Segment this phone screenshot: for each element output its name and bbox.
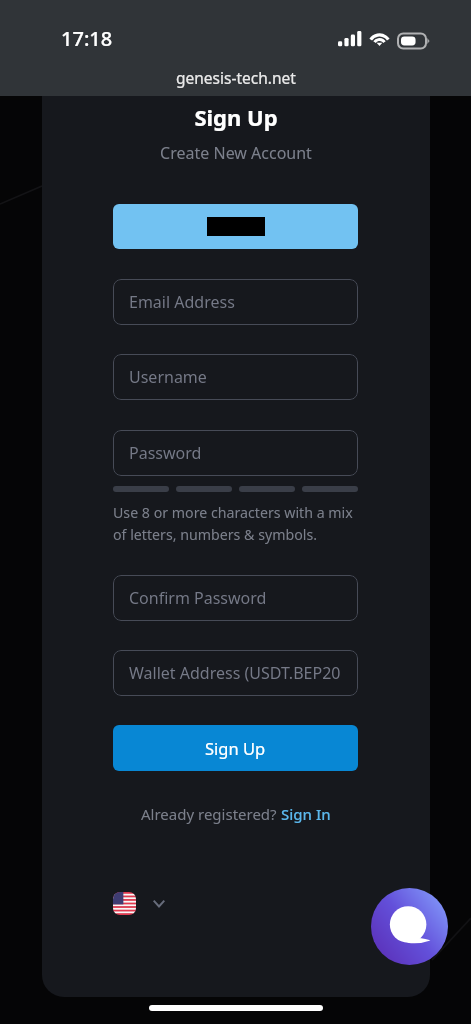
staticText: genesis-tech.net xyxy=(176,67,296,88)
staticText: Email Address xyxy=(129,291,235,313)
button[interactable]: Sign Up xyxy=(113,725,358,771)
button[interactable]: Sign In xyxy=(281,804,331,824)
button[interactable]: Sign up with Google xyxy=(113,204,358,249)
staticText: Sign Up xyxy=(42,102,430,132)
staticText: Use 8 or more characters with a mix of l… xyxy=(113,503,356,544)
button[interactable]: Open chat xyxy=(371,888,448,965)
button[interactable]: Confirm Password xyxy=(113,575,358,621)
staticText: Already registered? xyxy=(141,804,281,824)
button[interactable]: Select language xyxy=(113,892,165,915)
button[interactable]: Wallet Address (USDT.BEP20 xyxy=(113,650,358,696)
button[interactable]: Email Address xyxy=(113,279,358,325)
button[interactable]: Username xyxy=(113,354,358,400)
staticText: Create New Account xyxy=(42,142,430,164)
staticText: Password xyxy=(129,442,202,464)
button[interactable]: Password xyxy=(113,430,358,476)
staticText: Sign Up xyxy=(205,737,266,759)
staticText: Wallet Address (USDT.BEP20 xyxy=(129,662,341,684)
staticText: Confirm Password xyxy=(129,587,267,609)
staticText: Username xyxy=(129,366,207,388)
staticText: 17:18 xyxy=(61,25,113,52)
